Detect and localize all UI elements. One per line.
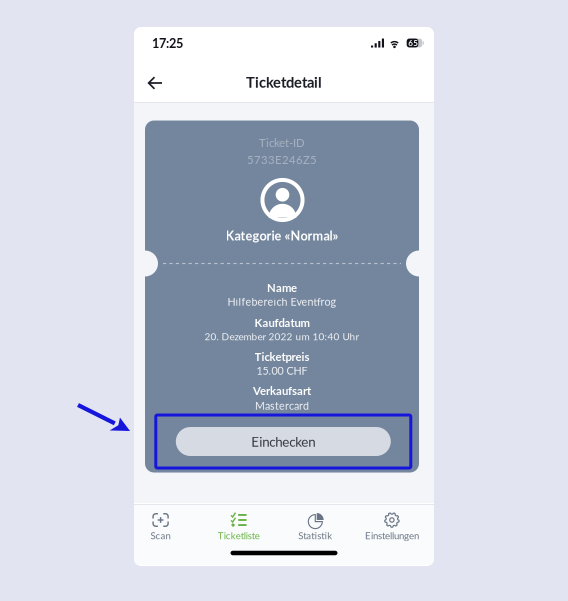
button[interactable]: Scan [124,504,198,546]
staticText: Einstellungen [365,530,419,541]
staticText: Scan [151,530,171,541]
staticText: Hilfebereich Eventfrog [227,295,336,308]
staticText: Ticketliste [218,530,260,541]
staticText: 17:25 [152,35,183,51]
staticText: Ticketpreis [254,350,309,363]
staticText: 65 [408,38,418,48]
staticText: Kategorie «Normal» [225,228,338,243]
button[interactable]: Einchecken [176,427,391,456]
button[interactable]: Back [140,69,170,97]
staticText: 20. Dezember 2022 um 10:40 Uhr [204,330,359,342]
staticText: Mastercard [255,399,309,412]
staticText: 15.00 CHF [256,364,307,377]
staticText: Ticketdetail [246,73,322,91]
staticText: Statistik [298,530,332,541]
staticText: Kaufdatum [254,316,309,329]
button[interactable]: Statistik [278,504,352,546]
staticText: Name [267,281,297,294]
staticText: Verkaufsart [253,384,311,397]
staticText: 5733E246Z5 [247,153,317,166]
staticText: Einchecken [251,433,315,449]
staticText: Ticket-ID [259,136,305,149]
button[interactable]: Ticketliste [202,504,276,546]
button[interactable]: Einstellungen [355,504,429,546]
